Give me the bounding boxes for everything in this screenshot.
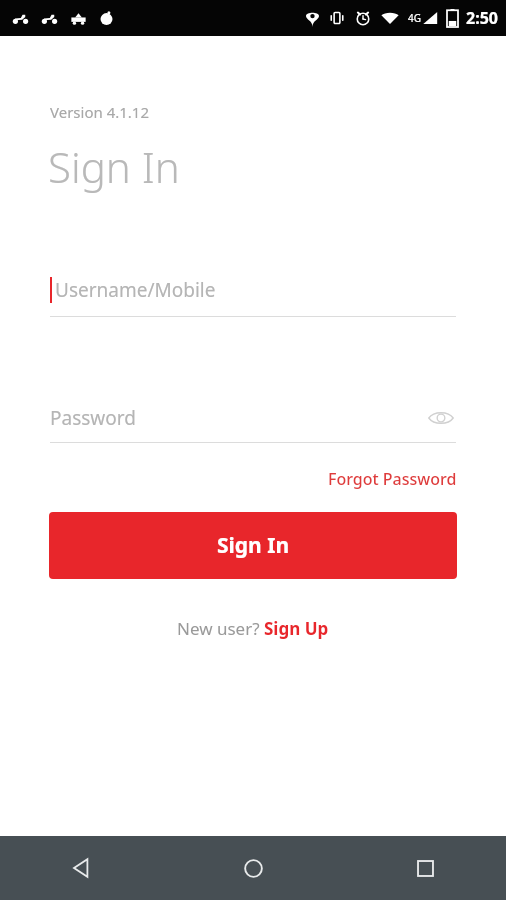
staticText: 2:50 [466, 7, 498, 29]
staticText: 4G [408, 11, 421, 25]
button[interactable]: Forgot Password [328, 468, 457, 490]
button[interactable]: Recent apps [398, 841, 452, 895]
staticText: Forgot Password [328, 468, 457, 490]
button[interactable]: Home [226, 841, 280, 895]
button[interactable]: Show password [426, 403, 456, 433]
button[interactable]: New user? Sign Up [177, 617, 329, 640]
button[interactable]: Back [54, 841, 108, 895]
button[interactable]: Password [50, 403, 456, 443]
staticText: Sign In [217, 531, 290, 560]
staticText: Password [50, 405, 136, 431]
staticText: Version 4.1.12 [50, 102, 150, 122]
staticText: New user? Sign Up [177, 617, 329, 640]
button[interactable]: Username/Mobile [50, 277, 456, 317]
staticText: Sign In [48, 138, 180, 195]
staticText: Username/Mobile [55, 277, 216, 303]
button[interactable]: Sign In [49, 512, 457, 579]
